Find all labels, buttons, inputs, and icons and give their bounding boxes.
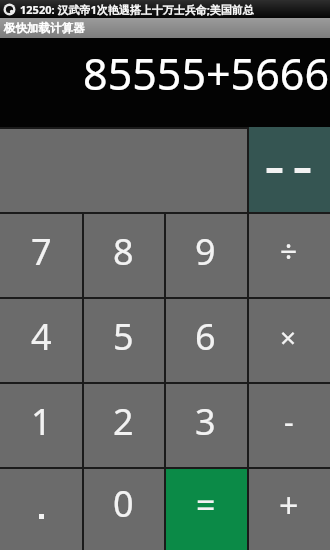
staticText: 0 bbox=[113, 479, 134, 528]
staticText: × bbox=[280, 318, 297, 356]
staticText: 5 bbox=[113, 312, 134, 361]
staticText: ÷ bbox=[280, 231, 298, 272]
staticText: + bbox=[279, 482, 299, 528]
staticText: 85555+5666 bbox=[0, 44, 329, 103]
button[interactable]: 85555+5666 bbox=[0, 38, 330, 127]
button[interactable]: 2 bbox=[82, 382, 164, 467]
staticText: 2 bbox=[113, 397, 134, 446]
staticText: - bbox=[284, 401, 294, 442]
staticText: = bbox=[196, 482, 216, 528]
button[interactable]: Clear bbox=[0, 127, 247, 212]
button[interactable]: + bbox=[247, 467, 330, 550]
staticText: 8 bbox=[113, 227, 134, 276]
button[interactable]: × bbox=[247, 297, 330, 382]
button[interactable]: 7 bbox=[0, 212, 82, 297]
staticText: 3 bbox=[195, 397, 216, 446]
staticText: 极快加载计算器 bbox=[4, 21, 85, 35]
staticText: 6 bbox=[195, 312, 216, 361]
staticText: 12520: 汉武帝1次艳遇搭上十万士兵命;美国前总 bbox=[20, 2, 254, 17]
button[interactable]: 1 bbox=[0, 382, 82, 467]
button[interactable]: 3 bbox=[164, 382, 247, 467]
button[interactable]: Decimal point bbox=[0, 467, 82, 550]
staticText: 4 bbox=[31, 312, 52, 361]
button[interactable]: 8 bbox=[82, 212, 164, 297]
staticText: 1 bbox=[31, 397, 52, 446]
staticText: 9 bbox=[195, 227, 216, 276]
button[interactable]: 4 bbox=[0, 297, 82, 382]
button[interactable]: 0 bbox=[82, 467, 164, 550]
button[interactable]: 9 bbox=[164, 212, 247, 297]
button[interactable]: Backspace bbox=[247, 127, 330, 212]
button[interactable]: 5 bbox=[82, 297, 164, 382]
button[interactable]: - bbox=[247, 382, 330, 467]
staticText: 7 bbox=[31, 227, 52, 276]
button[interactable]: = bbox=[164, 467, 247, 550]
button[interactable]: 6 bbox=[164, 297, 247, 382]
button[interactable]: ÷ bbox=[247, 212, 330, 297]
